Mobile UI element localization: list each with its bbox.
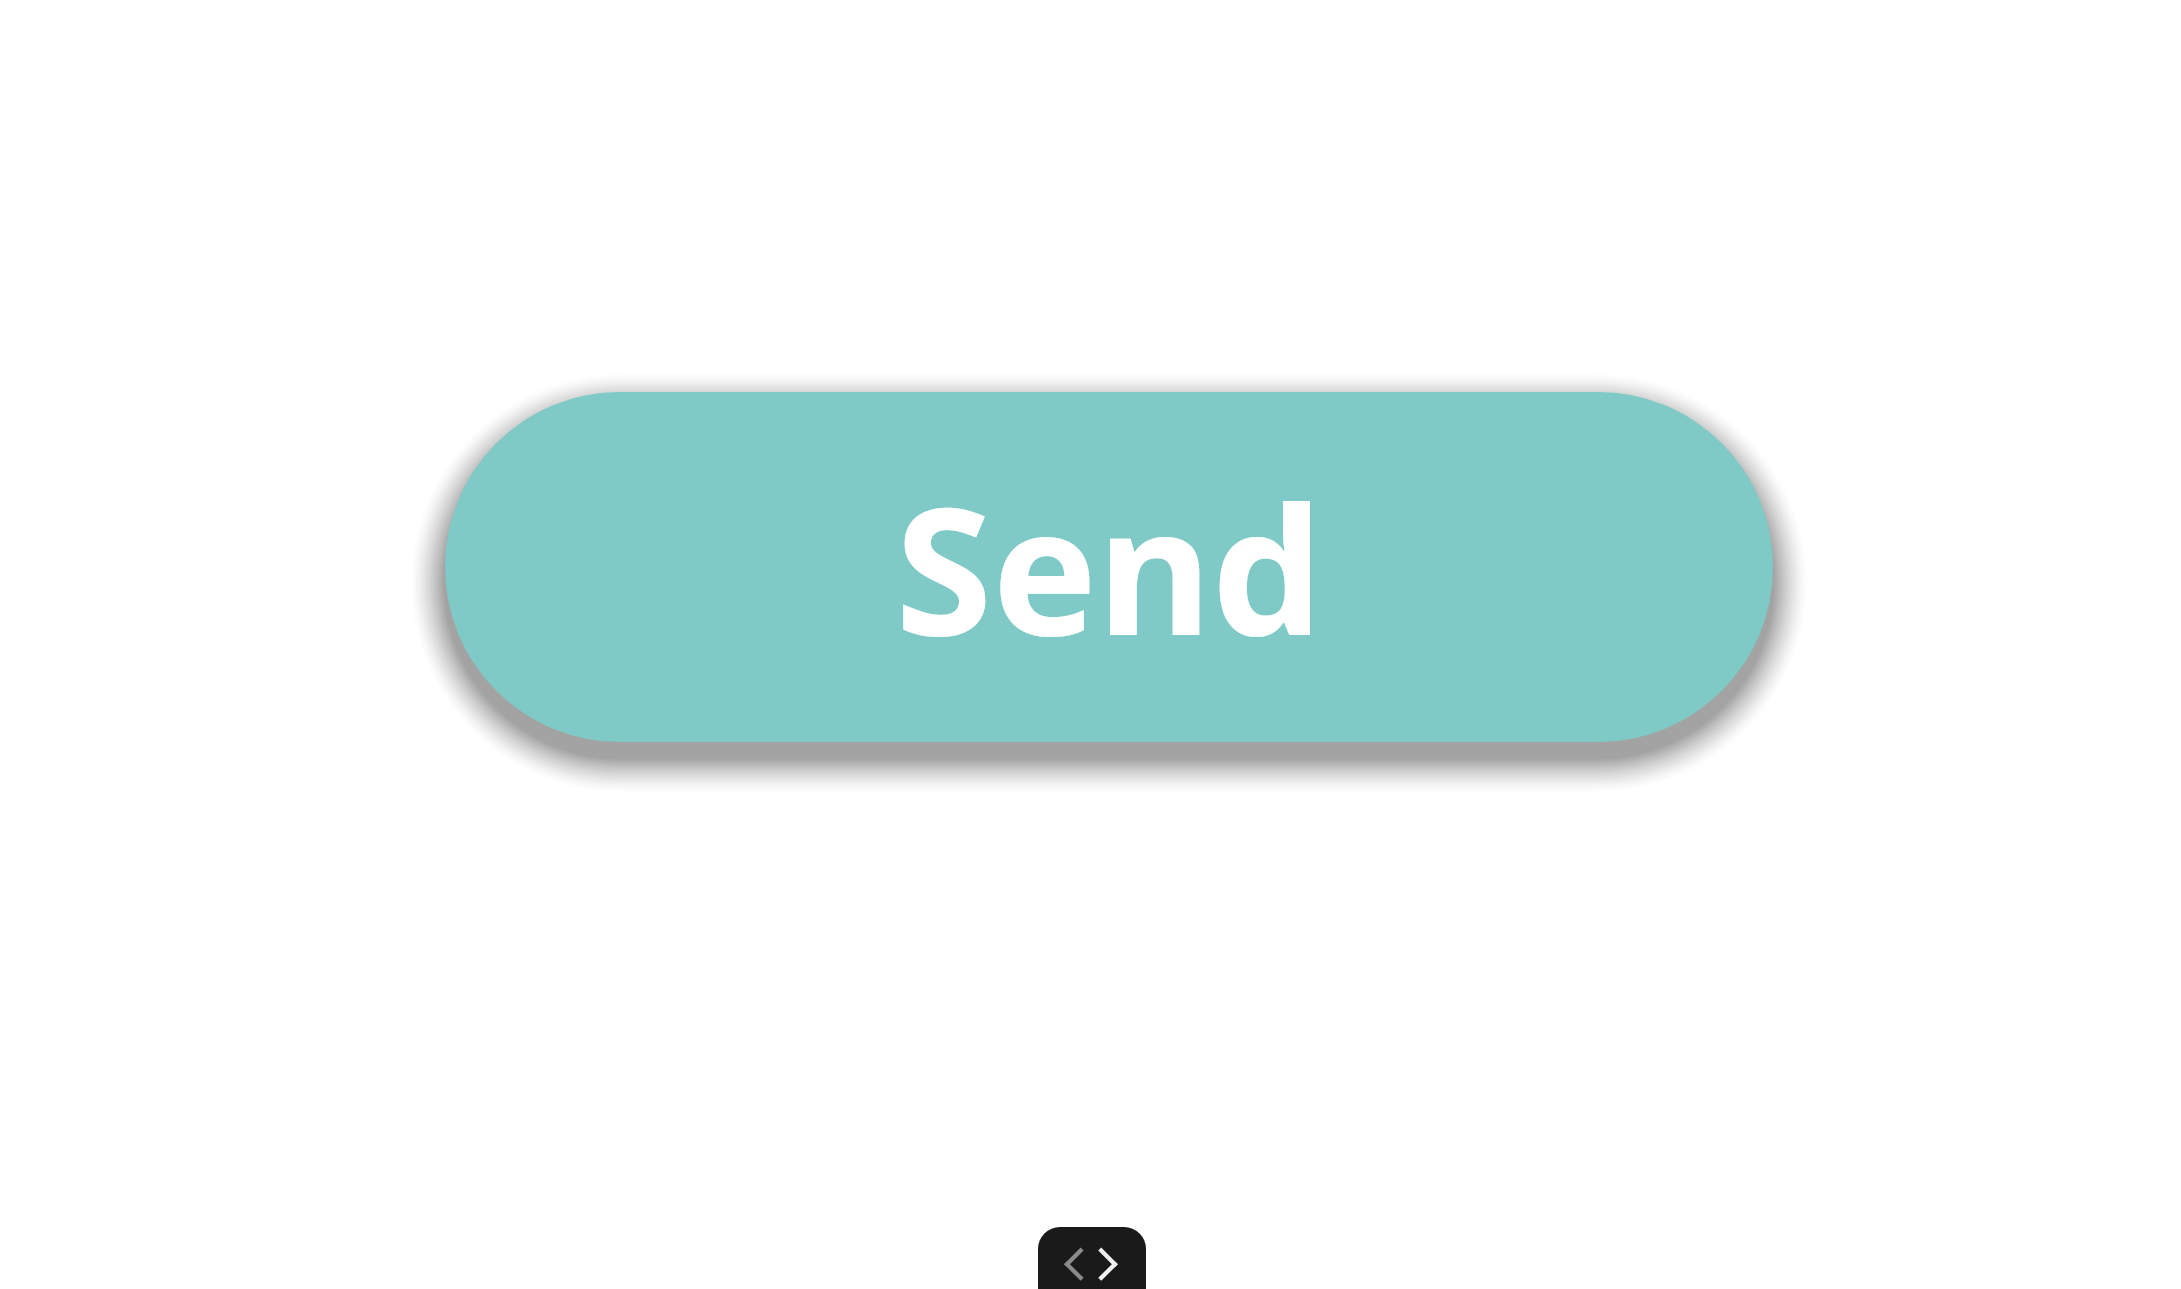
- button[interactable]: Forward: [1092, 1227, 1146, 1289]
- staticText: Send: [895, 447, 1323, 687]
- button[interactable]: Back: [1038, 1227, 1092, 1289]
- button[interactable]: Send: [445, 392, 1773, 742]
